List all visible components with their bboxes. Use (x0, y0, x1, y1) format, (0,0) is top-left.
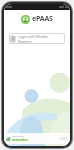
staticText: v1.0.0 (60, 137, 68, 141)
staticText: ePAAS (32, 14, 53, 24)
staticText: Powered by (12, 135, 24, 138)
other: Mobile number (11, 36, 15, 42)
staticText: Login with Mobile Number (18, 34, 63, 44)
button[interactable]: Mobile number (9, 33, 65, 44)
staticText: nextenders (12, 138, 28, 142)
